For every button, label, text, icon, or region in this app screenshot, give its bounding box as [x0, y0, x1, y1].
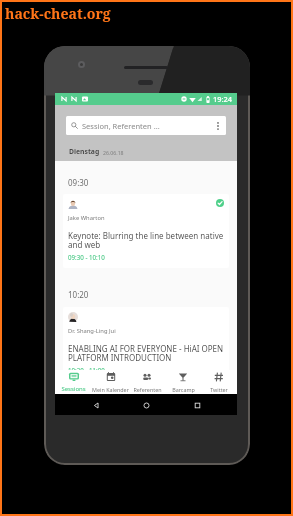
staticText: 26.06.18 [103, 149, 124, 156]
button[interactable]: Session, Referenten ... [66, 116, 226, 135]
staticText: Barcamp [172, 386, 195, 393]
staticText: Mein Kalender [92, 386, 129, 393]
staticText: 10:20 [68, 289, 89, 300]
button[interactable]: Home [136, 395, 156, 415]
staticText: ENABLING AI FOR EVERYONE - HiAI OPEN PLA… [68, 343, 224, 364]
button[interactable]: Barcamp [165, 370, 201, 394]
staticText: Sessions [61, 385, 86, 393]
button[interactable]: Dr. Shang-Ling Jui [63, 307, 229, 381]
button[interactable]: Back [86, 395, 106, 415]
staticText: Referenten [133, 386, 162, 393]
button[interactable]: Twitter [201, 370, 237, 394]
staticText: hack-cheat.org [5, 4, 111, 23]
button[interactable]: Sessions [55, 370, 92, 394]
button[interactable]: Mein Kalender [92, 370, 129, 394]
staticText: 10:20 - 11:00 [68, 366, 105, 374]
staticText: Session, Referenten ... [82, 121, 160, 131]
staticText: Dr. Shang-Ling Jui [68, 327, 116, 335]
staticText: Keynote: Blurring the line between nativ… [68, 230, 224, 251]
button[interactable]: Jake Wharton [63, 194, 229, 268]
button[interactable]: Referenten [129, 370, 165, 394]
button[interactable]: More options [214, 119, 222, 133]
staticText: 19:24 [213, 94, 232, 104]
staticText: 09:30 - 10:10 [68, 253, 105, 261]
staticText: Twitter [210, 386, 228, 393]
button[interactable]: Recent apps [187, 395, 207, 415]
staticText: Dienstag [69, 147, 100, 156]
staticText: Jake Wharton [68, 214, 105, 222]
staticText: 09:30 [68, 177, 89, 188]
